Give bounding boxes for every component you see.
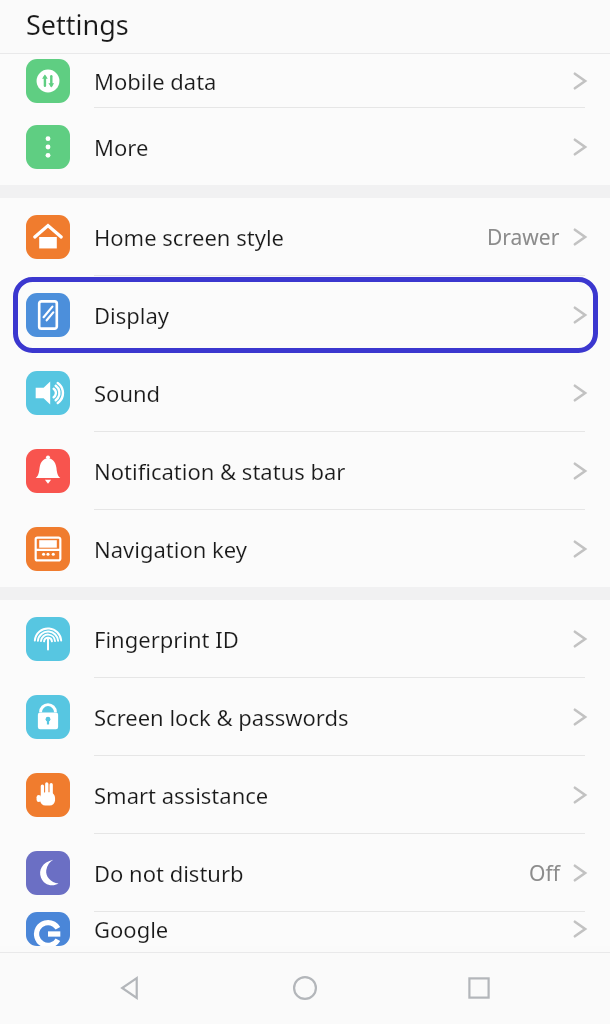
staticText: More xyxy=(94,132,149,162)
staticText: Off xyxy=(529,859,560,888)
staticText: Mobile data xyxy=(94,66,217,96)
other: Open xyxy=(572,704,588,730)
other: Open xyxy=(572,68,588,94)
other: Open xyxy=(572,458,588,484)
staticText: Smart assistance xyxy=(94,780,269,810)
button[interactable]: Display xyxy=(0,276,610,354)
other: Open xyxy=(572,916,588,942)
button[interactable]: Recent apps xyxy=(445,954,513,1022)
button[interactable]: Notification & status bar xyxy=(0,432,610,510)
other: Open xyxy=(572,224,588,250)
button[interactable]: Fingerprint ID xyxy=(0,600,610,678)
staticText: Display xyxy=(94,300,170,330)
button[interactable]: Sound xyxy=(0,354,610,432)
button[interactable]: Back xyxy=(97,954,165,1022)
staticText: Navigation key xyxy=(94,534,247,564)
button[interactable]: Google xyxy=(0,912,610,946)
staticText: Settings xyxy=(26,6,129,43)
button[interactable]: Home screen style xyxy=(0,198,610,276)
button[interactable]: Navigation key xyxy=(0,510,610,587)
staticText: Sound xyxy=(94,378,161,408)
button[interactable]: More xyxy=(0,108,610,185)
other: Open xyxy=(572,860,588,886)
staticText: Fingerprint ID xyxy=(94,624,239,654)
staticText: Notification & status bar xyxy=(94,456,346,486)
button[interactable]: Screen lock & passwords xyxy=(0,678,610,756)
staticText: Home screen style xyxy=(94,222,284,252)
other: Open xyxy=(572,134,588,160)
staticText: Google xyxy=(94,914,169,944)
staticText: Drawer xyxy=(487,223,560,252)
other: Open xyxy=(572,782,588,808)
button[interactable]: Do not disturb xyxy=(0,834,610,912)
other: Open xyxy=(572,380,588,406)
other: Open xyxy=(572,536,588,562)
staticText: Do not disturb xyxy=(94,858,244,888)
other: Open xyxy=(572,302,588,328)
button[interactable]: Home xyxy=(271,954,339,1022)
other: Open xyxy=(572,626,588,652)
staticText: Screen lock & passwords xyxy=(94,702,349,732)
button[interactable]: Mobile data xyxy=(0,54,610,108)
button[interactable]: Smart assistance xyxy=(0,756,610,834)
